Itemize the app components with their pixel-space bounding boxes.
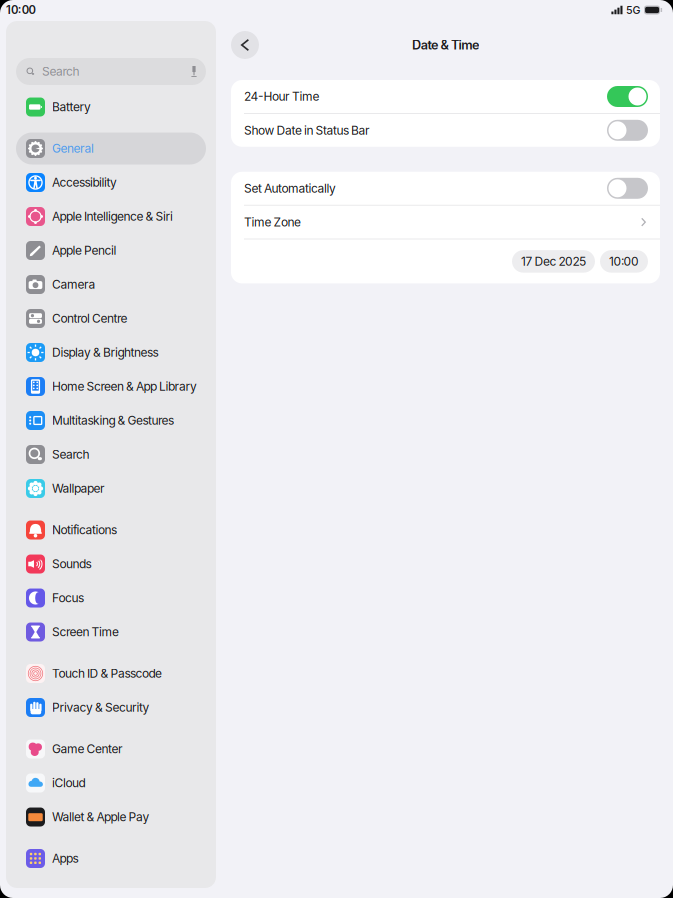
staticText: Apps bbox=[52, 851, 78, 866]
button[interactable]: Sounds bbox=[16, 547, 206, 581]
button[interactable]: Apple Intelligence & Siri bbox=[16, 199, 206, 233]
staticText: Sounds bbox=[52, 557, 91, 571]
staticText: Search bbox=[42, 64, 79, 79]
button[interactable]: Screen Time bbox=[16, 615, 206, 649]
staticText: Set Automatically bbox=[244, 181, 336, 195]
staticText: 24-Hour Time bbox=[244, 89, 319, 104]
button[interactable]: Time Zone bbox=[231, 206, 660, 239]
button[interactable]: Camera bbox=[16, 267, 206, 301]
button[interactable]: 24-Hour Time bbox=[231, 80, 660, 113]
button[interactable]: Apps bbox=[16, 841, 206, 875]
staticText: 5G bbox=[626, 3, 640, 16]
staticText: Time Zone bbox=[244, 215, 301, 229]
staticText: iCloud bbox=[52, 776, 85, 790]
button[interactable]: Accessibility bbox=[16, 165, 206, 199]
staticText: Notifications bbox=[52, 523, 117, 537]
staticText: Focus bbox=[52, 591, 84, 605]
button[interactable]: Touch ID & Passcode bbox=[16, 656, 206, 690]
button[interactable]: Set Automatically bbox=[231, 172, 660, 205]
staticText: Multitasking & Gestures bbox=[52, 413, 174, 428]
staticText: 17 Dec 2025 bbox=[521, 254, 586, 269]
staticText: 10:00 bbox=[609, 254, 639, 269]
staticText: Game Center bbox=[52, 742, 123, 756]
button[interactable]: Control Centre bbox=[16, 301, 206, 335]
staticText: Wallpaper bbox=[52, 481, 105, 496]
button[interactable]: Home Screen & App Library bbox=[16, 369, 206, 403]
button[interactable]: Show Date in Status Bar bbox=[231, 114, 660, 147]
staticText: Control Centre bbox=[52, 311, 127, 326]
staticText: Wallet & Apple Pay bbox=[52, 810, 149, 824]
staticText: Home Screen & App Library bbox=[52, 379, 197, 394]
button[interactable]: Apple Pencil bbox=[16, 233, 206, 267]
staticText: Date & Time bbox=[412, 37, 479, 53]
staticText: Apple Intelligence & Siri bbox=[52, 209, 173, 224]
button[interactable]: 10:00 bbox=[600, 250, 648, 273]
button[interactable]: Battery bbox=[16, 90, 206, 124]
staticText: Display & Brightness bbox=[52, 345, 158, 360]
button[interactable]: Search bbox=[16, 58, 206, 85]
button[interactable]: Wallpaper bbox=[16, 471, 206, 505]
staticText: Privacy & Security bbox=[52, 700, 149, 715]
button[interactable]: Game Center bbox=[16, 732, 206, 766]
button[interactable]: Multitasking & Gestures bbox=[16, 403, 206, 437]
staticText: Battery bbox=[52, 100, 91, 114]
staticText: Show Date in Status Bar bbox=[244, 123, 370, 137]
button[interactable]: Display & Brightness bbox=[16, 335, 206, 369]
staticText: 10:00 bbox=[6, 3, 36, 17]
button[interactable]: Wallet & Apple Pay bbox=[16, 800, 206, 834]
button[interactable]: 17 Dec 2025 bbox=[512, 250, 595, 273]
staticText: Apple Pencil bbox=[52, 243, 116, 258]
staticText: Camera bbox=[52, 277, 95, 292]
button[interactable]: Back bbox=[231, 31, 259, 59]
staticText: Search bbox=[52, 447, 89, 462]
staticText: Screen Time bbox=[52, 625, 119, 639]
button[interactable]: Privacy & Security bbox=[16, 690, 206, 724]
button[interactable]: Notifications bbox=[16, 513, 206, 547]
button[interactable]: Focus bbox=[16, 581, 206, 615]
staticText: General bbox=[52, 141, 94, 156]
staticText: Accessibility bbox=[52, 175, 117, 190]
button[interactable]: Search bbox=[16, 437, 206, 471]
button[interactable]: iCloud bbox=[16, 766, 206, 800]
staticText: Touch ID & Passcode bbox=[52, 666, 162, 681]
button[interactable]: General bbox=[16, 131, 206, 165]
